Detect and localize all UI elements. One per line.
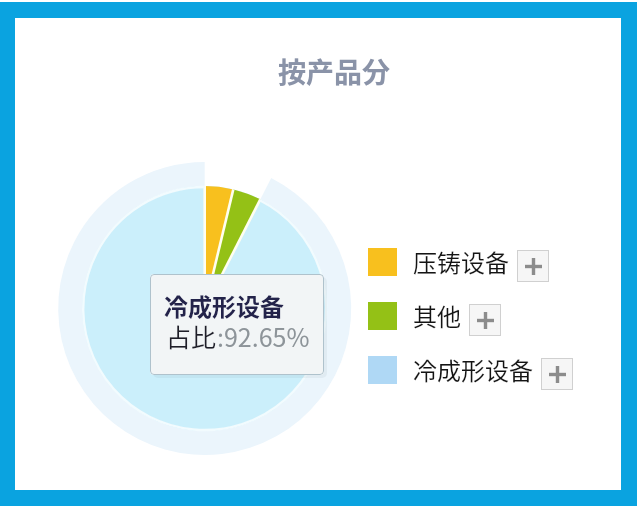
staticText: 其他 <box>413 298 461 333</box>
button[interactable]: Add 冷成形设备 <box>541 358 573 390</box>
button[interactable]: Add 压铸设备 <box>517 250 549 282</box>
button[interactable]: 冷成形设备 <box>368 356 533 391</box>
staticText: :92.65% <box>217 318 310 354</box>
staticText: 压铸设备 <box>413 244 509 279</box>
staticText: 按产品分 <box>278 51 391 92</box>
button[interactable]: Add 其他 <box>469 304 501 336</box>
staticText: 冷成形设备 <box>164 288 284 323</box>
staticText: 冷成形设备 <box>413 352 533 387</box>
staticText: 占比 <box>166 318 217 354</box>
button[interactable]: 其他 <box>368 302 461 337</box>
button[interactable]: 压铸设备 <box>368 248 509 283</box>
